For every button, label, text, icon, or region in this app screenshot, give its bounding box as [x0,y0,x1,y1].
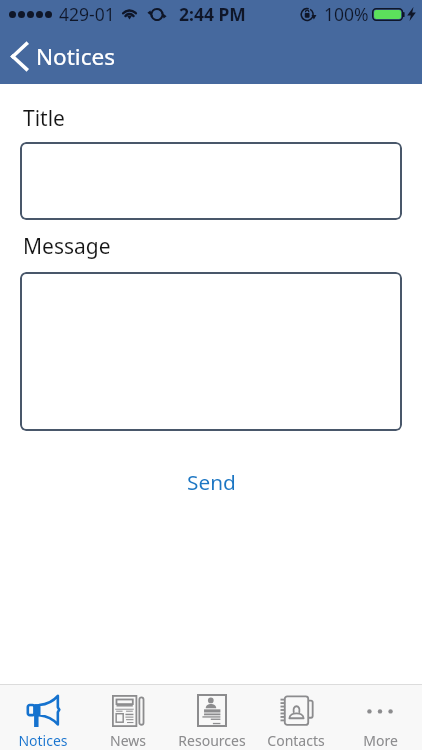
button[interactable]: Back [0,34,123,78]
button[interactable]: Resources [170,685,254,750]
staticText: Resources [178,731,246,750]
button[interactable]: News [85,685,170,750]
button[interactable]: More [338,685,422,750]
staticText: Contacts [267,731,325,750]
staticText: More [363,731,398,750]
staticText: 429-01 [59,2,115,26]
button[interactable]: Send [181,462,242,502]
staticText: 2:44 PM [179,2,246,26]
staticText: 100% [324,2,369,26]
button[interactable]: Contacts [254,685,338,750]
staticText: Title [23,104,65,133]
staticText: News [110,731,146,750]
button[interactable] [20,142,402,220]
staticText: Notices [18,731,68,750]
button[interactable] [20,272,402,431]
staticText: Notices [36,41,115,72]
staticText: Message [23,232,111,261]
button[interactable]: Notices [0,685,85,750]
